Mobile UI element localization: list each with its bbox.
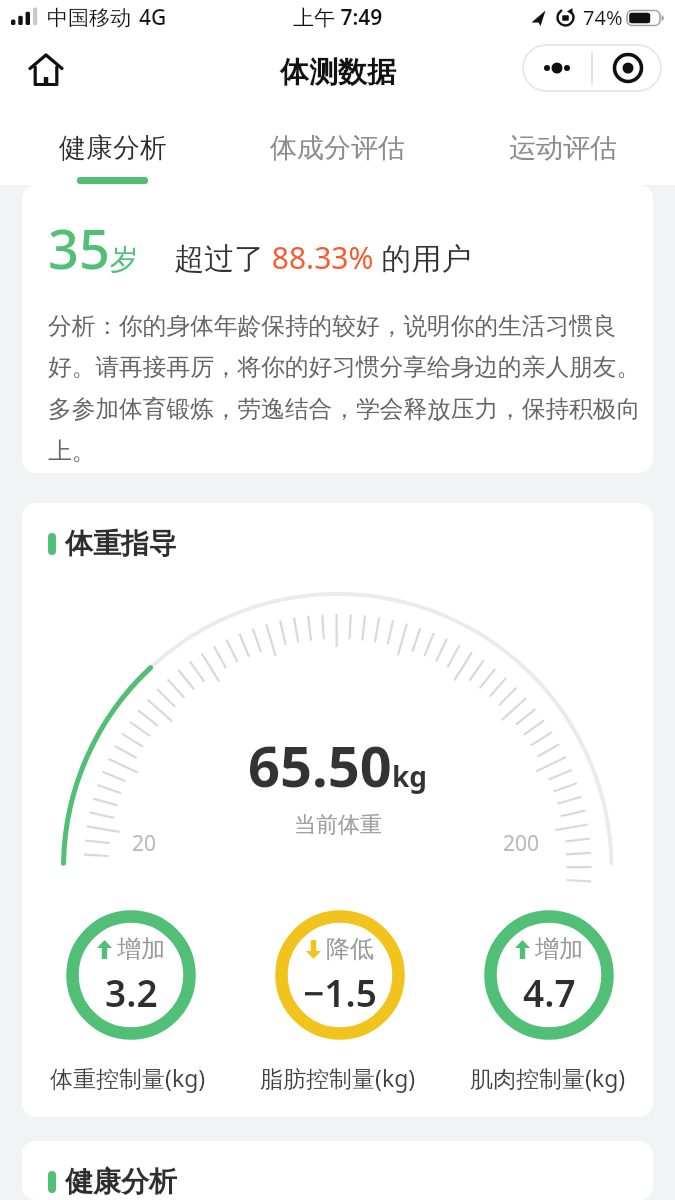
staticText: 4.7 bbox=[523, 967, 576, 1017]
staticText: 体成分评估 bbox=[270, 131, 405, 165]
staticText: 降低 bbox=[326, 934, 374, 964]
button[interactable]: 健康分析 bbox=[0, 105, 225, 185]
button[interactable] bbox=[593, 44, 662, 92]
staticText: 分析：你的身体年龄保持的较好，说明你的生活习惯良 好。请再接再厉，将你的好习惯分… bbox=[48, 311, 641, 466]
staticText: 脂肪控制量(kg) bbox=[260, 1062, 416, 1093]
staticText: 65.50 bbox=[248, 727, 392, 803]
staticText: 增加 bbox=[117, 934, 165, 964]
staticText: 当前体重 bbox=[294, 811, 382, 839]
staticText: 体测数据 bbox=[280, 54, 396, 91]
staticText: −1.5 bbox=[303, 967, 377, 1017]
button[interactable]: 运动评估 bbox=[450, 105, 675, 185]
staticText: 肌肉控制量(kg) bbox=[470, 1062, 626, 1093]
staticText: 体重控制量(kg) bbox=[50, 1062, 206, 1093]
staticText: 运动评估 bbox=[509, 131, 617, 165]
staticText: 中国移动 bbox=[47, 5, 131, 31]
button[interactable]: 体成分评估 bbox=[225, 105, 450, 185]
staticText: 体重指导 bbox=[65, 526, 177, 561]
staticText: 3.2 bbox=[105, 967, 158, 1017]
staticText: 健康分析 bbox=[65, 1164, 177, 1199]
staticText: 200 bbox=[503, 829, 540, 858]
staticText: kg bbox=[392, 757, 428, 795]
button[interactable] bbox=[522, 44, 591, 92]
staticText: 增加 bbox=[535, 934, 583, 964]
staticText: 超过了 88.33% 的用户 bbox=[174, 237, 472, 278]
staticText: 20 bbox=[132, 829, 157, 858]
staticText: 岁 bbox=[110, 242, 138, 277]
button[interactable] bbox=[30, 55, 62, 86]
staticText: 健康分析 bbox=[59, 131, 167, 165]
staticText: 35 bbox=[48, 211, 110, 285]
staticText: 上午 7:49 bbox=[293, 3, 383, 32]
staticText: 74% bbox=[583, 4, 623, 31]
staticText: 4G bbox=[139, 3, 167, 32]
